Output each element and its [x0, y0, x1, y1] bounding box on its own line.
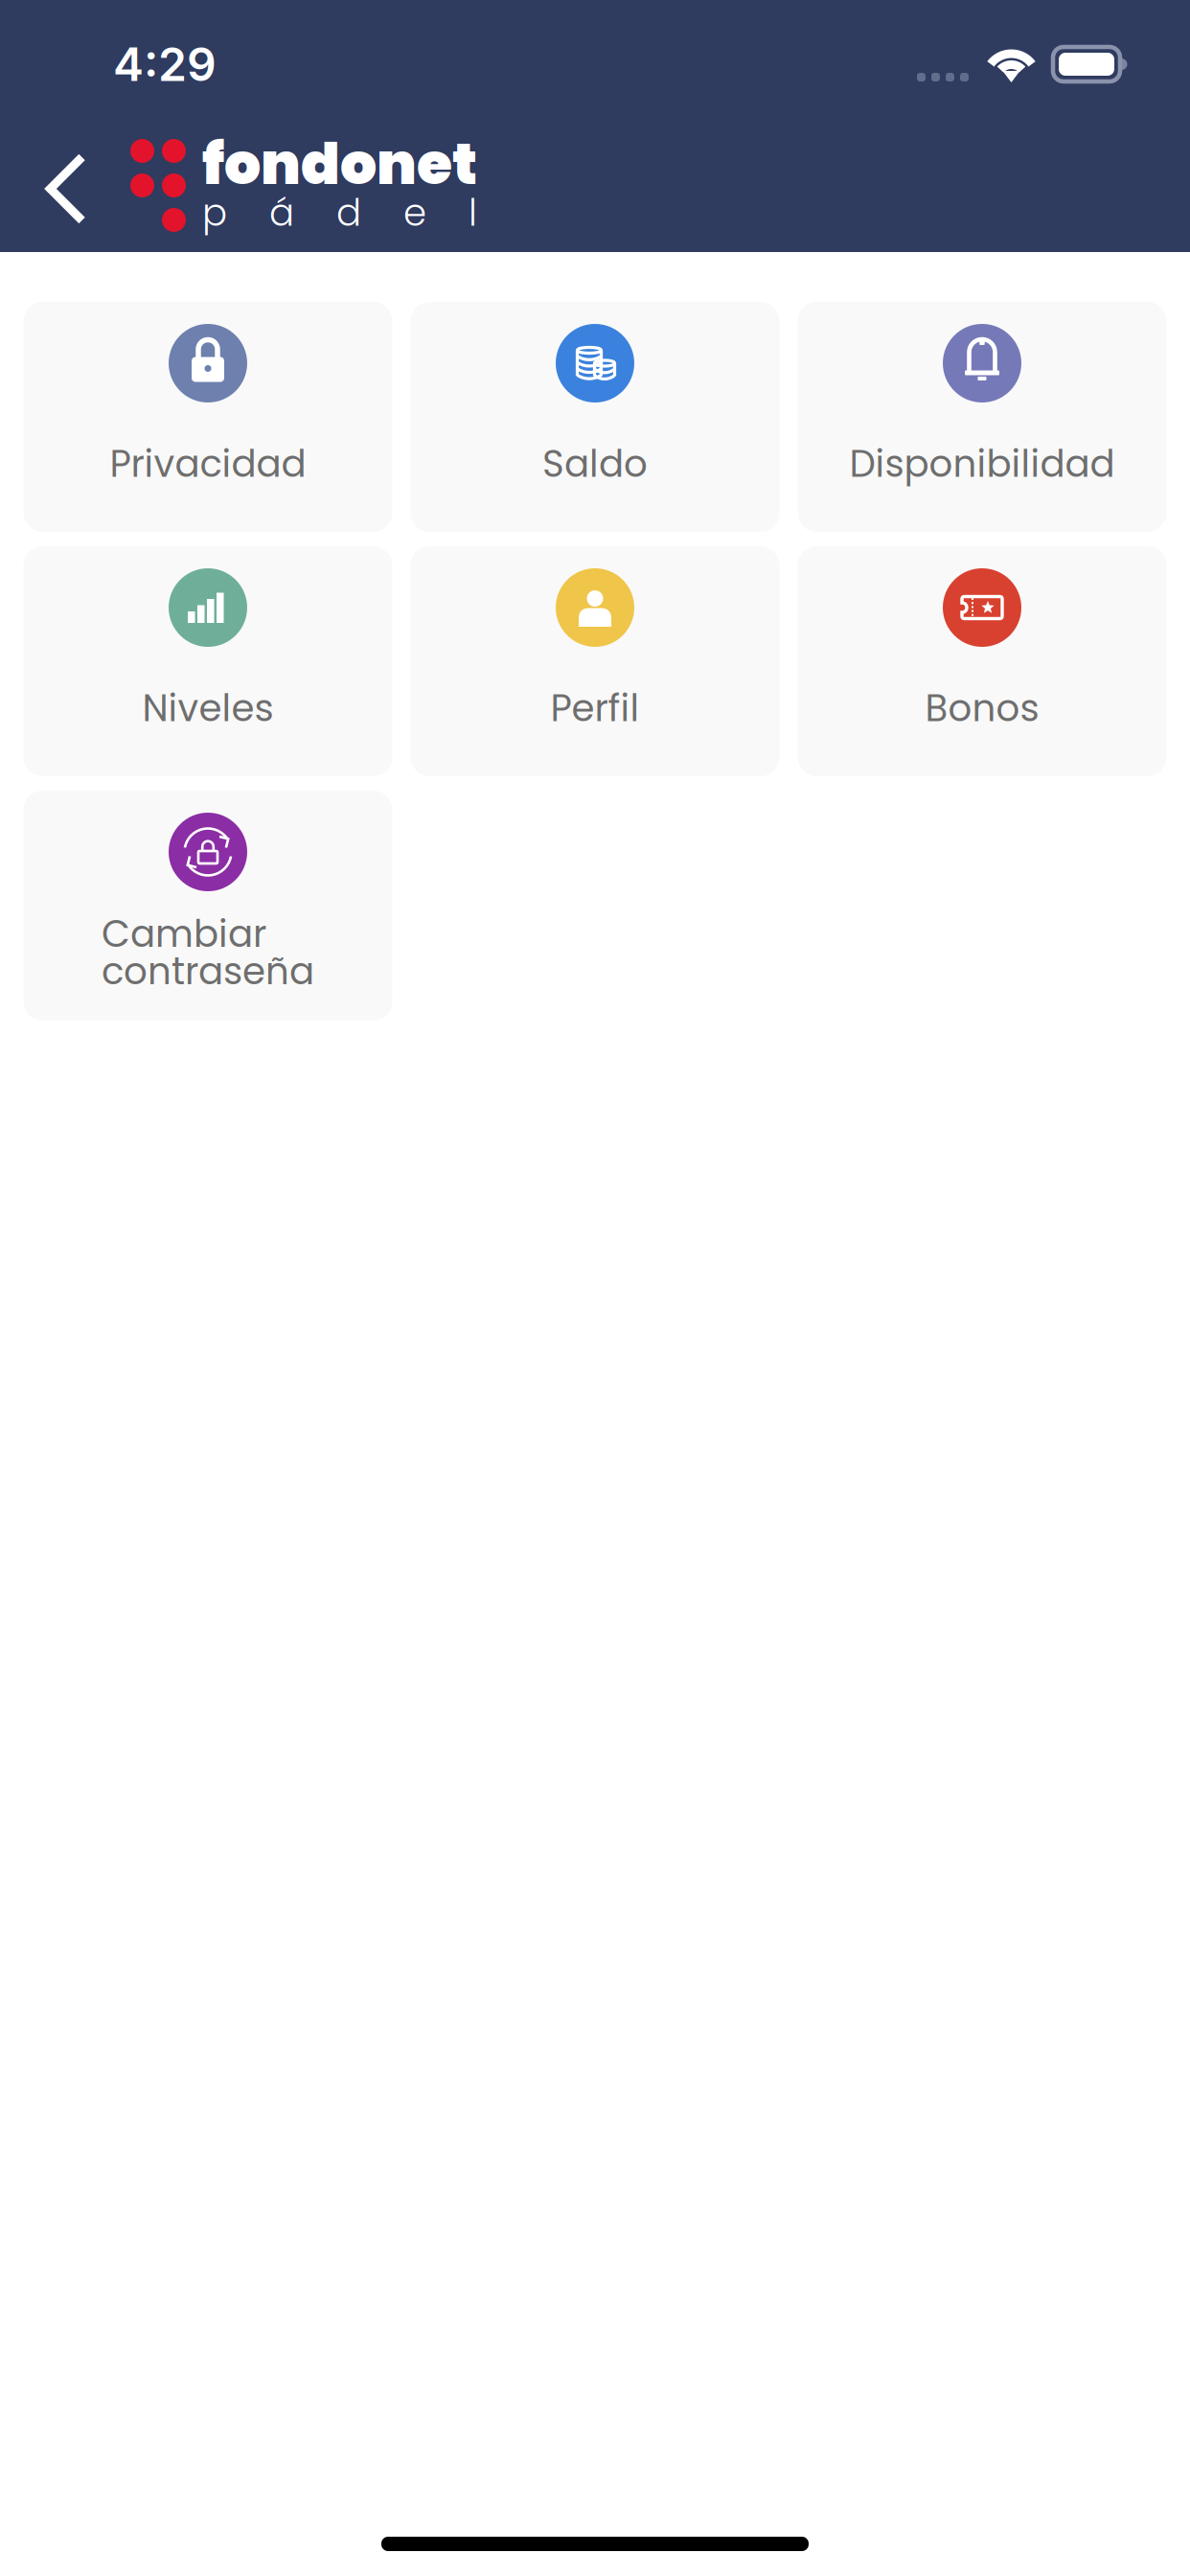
- button[interactable]: Saldo: [411, 302, 779, 532]
- button[interactable]: Perfil: [411, 546, 779, 776]
- button[interactable]: Disponibilidad: [798, 302, 1167, 532]
- button[interactable]: Privacidad: [23, 302, 392, 532]
- button[interactable]: Back: [20, 131, 112, 246]
- staticText: Perfil: [550, 682, 640, 734]
- staticText: Privacidad: [110, 438, 306, 490]
- staticText: pádel: [202, 187, 477, 239]
- button[interactable]: Niveles: [23, 546, 392, 776]
- staticText: Disponibilidad: [849, 438, 1115, 490]
- staticText: Cambiar contraseña: [102, 908, 314, 997]
- button[interactable]: Cambiar contraseña: [23, 791, 392, 1021]
- staticText: fondonet: [202, 124, 477, 204]
- staticText: Bonos: [925, 682, 1039, 734]
- staticText: Niveles: [142, 682, 274, 734]
- button[interactable]: Bonos: [798, 546, 1167, 776]
- staticText: Saldo: [542, 438, 648, 490]
- staticText: 4:29: [113, 36, 217, 92]
